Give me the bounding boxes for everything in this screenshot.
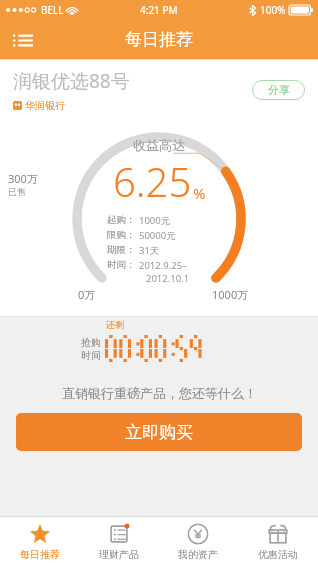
staticText: 2012.10.1 (146, 272, 190, 285)
staticText: 6.25 (113, 154, 192, 208)
staticText: 我的资产 (178, 548, 218, 561)
staticText: 4:21 PM (140, 3, 178, 17)
staticText: 时间： (107, 259, 139, 271)
staticText: 300万 (8, 171, 38, 186)
button[interactable]: Menu (6, 23, 40, 57)
staticText: 2012.9.25– (139, 259, 187, 272)
button[interactable]: 立即购买 (16, 413, 302, 451)
staticText: 31天 (139, 244, 160, 257)
staticText: 每日推荐 (125, 29, 193, 50)
button[interactable]: 优惠活动 (238, 517, 318, 566)
staticText: 时间 (81, 349, 101, 362)
button[interactable]: 我的资产 (158, 517, 238, 566)
staticText: 润银优选88号 (13, 68, 130, 94)
staticText: 期限： (107, 244, 139, 256)
staticText: 直销银行重磅产品，您还等什么！ (62, 385, 257, 401)
staticText: 收益高达 (133, 137, 185, 153)
staticText: BELL (41, 3, 64, 17)
staticText: 0万 (78, 287, 96, 302)
staticText: 分享 (268, 83, 290, 97)
staticText: 华润银行 (25, 99, 65, 112)
staticText: 50000元 (139, 229, 176, 242)
staticText: 抢购 (81, 336, 101, 349)
staticText: 1000元 (139, 214, 171, 227)
staticText: % (193, 183, 206, 203)
staticText: 100% (260, 3, 286, 17)
staticText: 每日推荐 (20, 548, 60, 561)
staticText: 理财产品 (99, 548, 139, 561)
staticText: 起购： (107, 214, 139, 226)
button[interactable]: 每日推荐 (0, 517, 79, 566)
staticText: 还剩 (106, 319, 124, 330)
staticText: 优惠活动 (258, 548, 298, 561)
staticText: 立即购买 (125, 422, 193, 443)
staticText: 限购： (107, 229, 139, 241)
staticText: 已售 (8, 186, 26, 197)
staticText: 1000万 (212, 287, 249, 302)
button[interactable]: 理财产品 (79, 517, 158, 566)
button[interactable]: 分享 (252, 80, 305, 100)
